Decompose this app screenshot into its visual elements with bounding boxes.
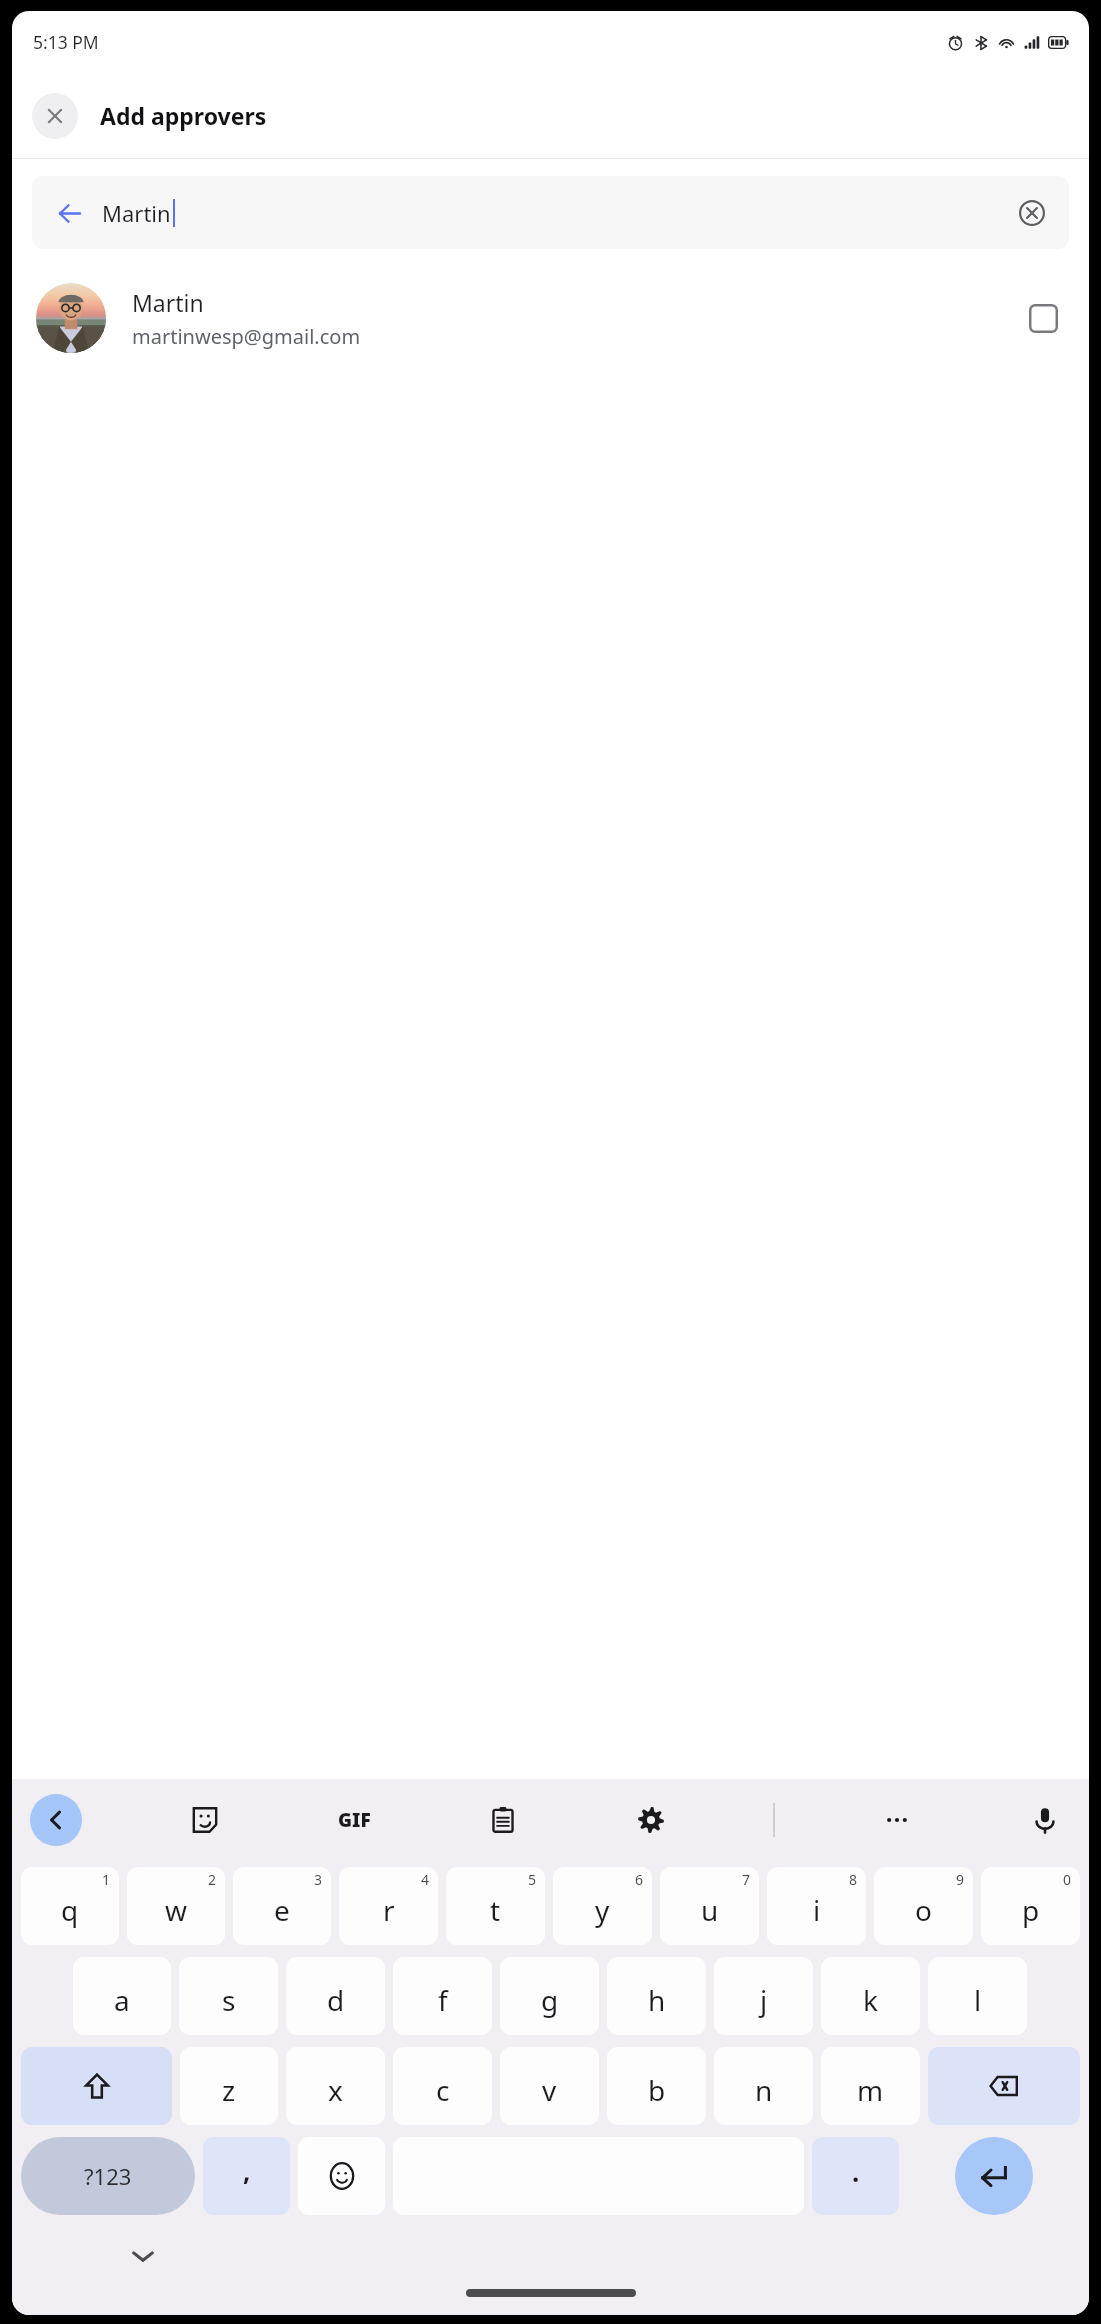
staticText: b	[648, 2071, 666, 2109]
button[interactable]: k	[821, 1957, 920, 2035]
staticText: e	[274, 1891, 290, 1929]
button[interactable]: Clear	[1011, 192, 1053, 234]
staticText: 5:13 PM	[33, 30, 99, 54]
staticText: r	[383, 1891, 395, 1929]
staticText: x	[328, 2071, 343, 2109]
button[interactable]: d	[286, 1957, 385, 2035]
staticText: p	[1022, 1891, 1040, 1929]
button[interactable]: Voice input	[1019, 1794, 1071, 1846]
button[interactable]: Emoji	[298, 2137, 385, 2215]
staticText: GIF	[338, 1807, 371, 1833]
staticText: i	[813, 1891, 821, 1929]
staticText: a	[114, 1981, 130, 2019]
button[interactable]: s	[179, 1957, 278, 2035]
staticText: 1	[102, 1870, 111, 1889]
staticText: z	[222, 2071, 236, 2109]
staticText: d	[327, 1981, 345, 2019]
button[interactable]: Hide keyboard	[120, 2233, 166, 2279]
staticText: m	[857, 2071, 884, 2109]
button[interactable]: Back	[46, 190, 92, 236]
staticText: 6	[635, 1870, 644, 1889]
staticText: s	[222, 1981, 236, 2019]
button[interactable]: Stickers	[179, 1794, 231, 1846]
staticText: y	[595, 1891, 610, 1929]
staticText: Martin	[102, 198, 171, 228]
button[interactable]: m	[821, 2047, 920, 2125]
button[interactable]: Clipboard	[477, 1794, 529, 1846]
button[interactable]: 5	[446, 1867, 545, 1945]
button[interactable]: .	[812, 2137, 899, 2215]
button[interactable]: Enter	[955, 2137, 1033, 2215]
staticText: g	[541, 1981, 559, 2019]
button[interactable]: 2	[127, 1867, 225, 1945]
button[interactable]: Select Martin	[1021, 296, 1065, 340]
button[interactable]: v	[500, 2047, 599, 2125]
staticText: u	[701, 1891, 719, 1929]
staticText: Martin	[132, 287, 204, 318]
button[interactable]: 7	[660, 1867, 759, 1945]
staticText: 2	[208, 1870, 217, 1889]
button[interactable]: x	[286, 2047, 385, 2125]
staticText: l	[974, 1981, 982, 2019]
staticText: 0	[1063, 1870, 1072, 1889]
staticText: t	[490, 1891, 501, 1929]
button[interactable]: c	[393, 2047, 492, 2125]
button[interactable]: Back	[32, 176, 1069, 249]
staticText: q	[61, 1891, 79, 1929]
button[interactable]: b	[607, 2047, 706, 2125]
button[interactable]: Back	[30, 1794, 82, 1846]
button[interactable]: More options	[871, 1794, 923, 1846]
staticText: o	[915, 1891, 932, 1929]
staticText: j	[760, 1981, 768, 2019]
button[interactable]: z	[180, 2047, 278, 2125]
button[interactable]: ,	[203, 2137, 290, 2215]
button[interactable]: 3	[233, 1867, 331, 1945]
staticText: 4	[421, 1870, 430, 1889]
staticText: 7	[742, 1870, 751, 1889]
staticText: v	[542, 2071, 557, 2109]
staticText: ?123	[84, 2161, 132, 2191]
button[interactable]: Backspace	[928, 2047, 1080, 2125]
staticText: Add approvers	[100, 100, 267, 131]
staticText: 8	[849, 1870, 858, 1889]
staticText: n	[755, 2071, 773, 2109]
staticText: c	[436, 2071, 450, 2109]
button[interactable]: l	[928, 1957, 1027, 2035]
button[interactable]: f	[393, 1957, 492, 2035]
staticText: 5	[528, 1870, 537, 1889]
button[interactable]: h	[607, 1957, 706, 2035]
button[interactable]: 1	[21, 1867, 119, 1945]
button[interactable]: j	[714, 1957, 813, 2035]
button[interactable]: Martin	[12, 266, 1089, 370]
button[interactable]: g	[500, 1957, 599, 2035]
button[interactable]: Shift	[21, 2047, 172, 2125]
staticText: ,	[243, 2153, 251, 2188]
staticText: k	[863, 1981, 878, 2019]
button[interactable]: ?123	[21, 2137, 195, 2215]
button[interactable]: Settings	[625, 1794, 677, 1846]
button[interactable]: 0	[981, 1867, 1080, 1945]
button[interactable]: Close	[32, 93, 78, 139]
staticText: .	[852, 2154, 860, 2189]
button[interactable]: 8	[767, 1867, 866, 1945]
staticText: h	[648, 1981, 666, 2019]
button[interactable]: 6	[553, 1867, 652, 1945]
button[interactable]: 4	[339, 1867, 438, 1945]
button[interactable]: a	[73, 1957, 171, 2035]
button[interactable]: GIF	[328, 1794, 380, 1846]
staticText: w	[165, 1891, 188, 1929]
staticText: martinwesp@gmail.com	[132, 323, 361, 350]
button[interactable]: n	[714, 2047, 813, 2125]
staticText: 9	[956, 1870, 965, 1889]
staticText: 3	[314, 1870, 323, 1889]
button[interactable]: 9	[874, 1867, 973, 1945]
staticText: f	[438, 1981, 448, 2019]
